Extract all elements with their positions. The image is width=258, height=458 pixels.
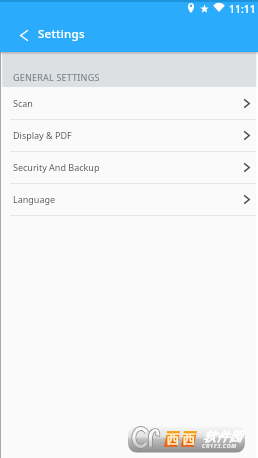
staticText: 11:11 — [229, 2, 256, 16]
staticText: Display & PDF — [13, 129, 244, 141]
staticText: Scan — [13, 97, 244, 109]
staticText: GENERAL SETTINGS — [13, 71, 100, 83]
button[interactable]: Security And Backup — [0, 152, 258, 183]
button[interactable]: Display & PDF — [0, 120, 258, 151]
staticText: Settings — [38, 26, 85, 42]
button[interactable]: Language — [0, 184, 258, 215]
staticText: Language — [13, 193, 244, 205]
staticText: 西西 — [165, 431, 197, 447]
staticText: 软件园 — [203, 428, 242, 444]
button[interactable]: Back — [0, 18, 36, 52]
staticText: CR173.COM — [202, 442, 237, 449]
staticText: Security And Backup — [13, 161, 244, 173]
button[interactable]: Scan — [0, 88, 258, 119]
